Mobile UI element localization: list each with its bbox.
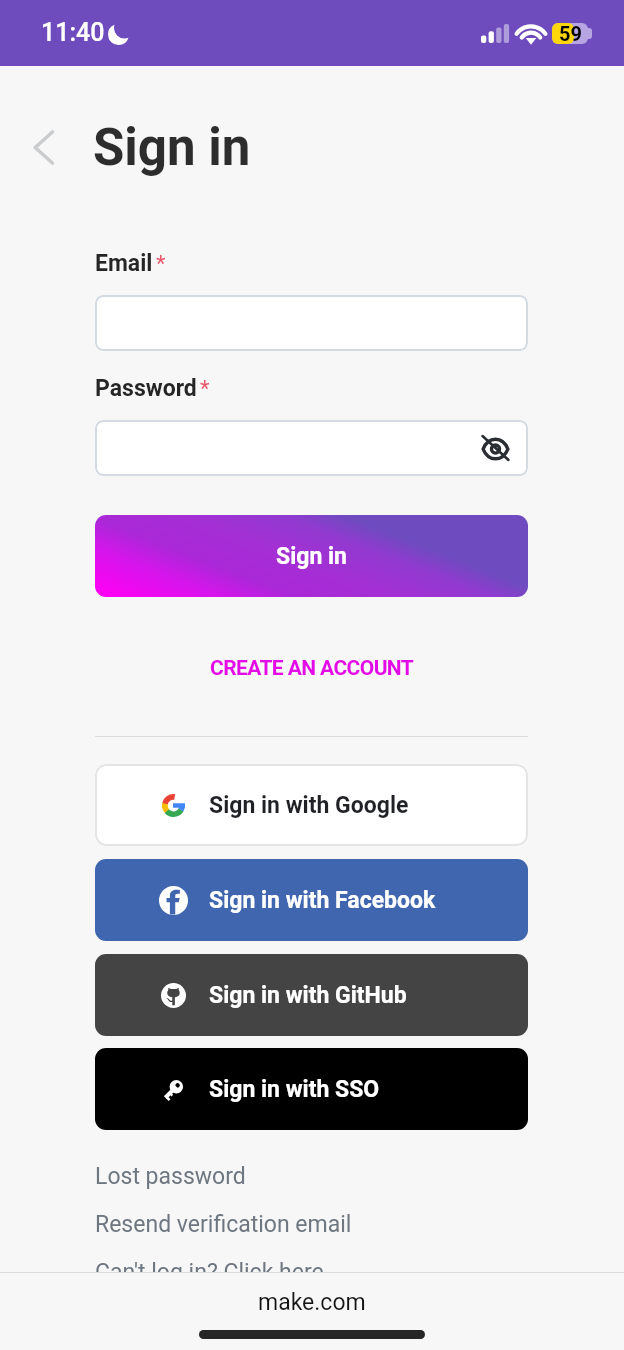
button[interactable]: Sign in with SSO <box>95 1048 528 1130</box>
button[interactable]: Sign in <box>95 515 528 597</box>
staticText: * <box>200 376 210 402</box>
button[interactable]: Lost password <box>95 1163 246 1190</box>
staticText: Sign in with GitHub <box>209 982 407 1009</box>
staticText: Can't log in? Click here <box>95 1259 324 1286</box>
button[interactable]: Show password <box>477 430 513 466</box>
staticText: Resend verification email <box>95 1211 352 1238</box>
staticText: CREATE AN ACCOUNT <box>210 656 414 681</box>
staticText: Sign in with SSO <box>209 1076 380 1103</box>
staticText: Password <box>95 375 197 402</box>
button[interactable]: Sign in with Facebook <box>95 859 528 941</box>
button[interactable] <box>95 295 528 351</box>
staticText: 59 <box>559 22 582 43</box>
button[interactable]: Can't log in? Click here <box>95 1259 324 1286</box>
staticText: Sign in <box>276 543 347 570</box>
staticText: 11:40 <box>41 18 105 47</box>
staticText: make.com <box>258 1289 366 1316</box>
button[interactable]: Sign in with Google <box>95 764 528 846</box>
staticText: Lost password <box>95 1163 246 1190</box>
button[interactable]: Back <box>18 118 70 176</box>
button[interactable]: Show password <box>95 420 528 476</box>
button[interactable]: Sign in with GitHub <box>95 954 528 1036</box>
staticText: Sign in with Google <box>209 792 409 819</box>
staticText: Sign in with Facebook <box>209 887 436 914</box>
staticText: Sign in <box>93 118 251 178</box>
staticText: * <box>156 251 166 277</box>
button[interactable]: Resend verification email <box>95 1211 352 1238</box>
button[interactable]: CREATE AN ACCOUNT <box>95 650 528 686</box>
staticText: Email <box>95 250 153 277</box>
